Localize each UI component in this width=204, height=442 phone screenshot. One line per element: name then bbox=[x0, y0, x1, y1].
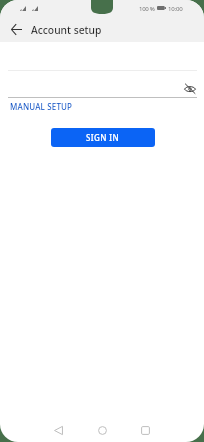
button[interactable]: SIGN IN bbox=[51, 128, 155, 147]
button[interactable]: Recent apps bbox=[135, 420, 155, 440]
staticText: 100 % bbox=[139, 4, 155, 12]
staticText: SIGN IN bbox=[86, 132, 120, 143]
staticText: Account setup bbox=[31, 23, 102, 37]
button[interactable]: Navigate up bbox=[3, 16, 29, 42]
button[interactable]: Home bbox=[92, 420, 112, 440]
button[interactable]: Show password bbox=[182, 81, 197, 96]
button[interactable]: Back bbox=[48, 420, 68, 440]
button[interactable]: MANUAL SETUP bbox=[9, 100, 74, 113]
staticText: MANUAL SETUP bbox=[10, 101, 73, 112]
staticText: 10:00 bbox=[168, 4, 183, 12]
